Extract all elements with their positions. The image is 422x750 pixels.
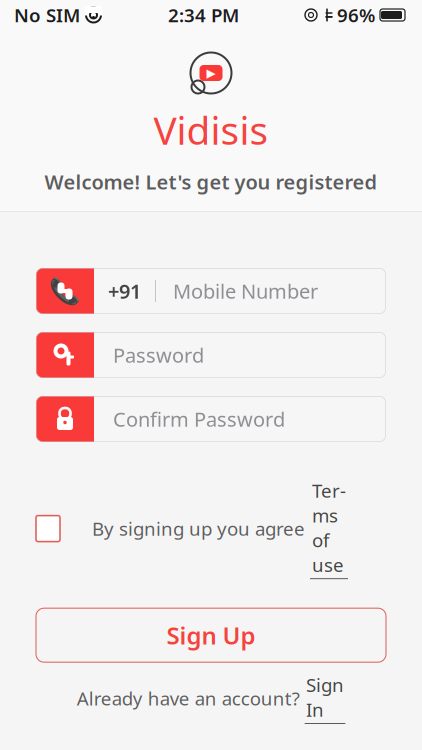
- staticText: Sign In: [306, 672, 344, 722]
- staticText: No SIM: [14, 3, 80, 27]
- staticText: Vidisis: [153, 104, 268, 155]
- staticText: ▶: [206, 66, 215, 80]
- staticText: Confirm Password: [113, 406, 285, 432]
- button[interactable]: Password: [36, 332, 386, 378]
- staticText: Welcome! Let's get you registered: [44, 168, 377, 195]
- button[interactable]: Sign Up: [36, 608, 386, 662]
- staticText: Password: [113, 342, 204, 368]
- staticText: Sign Up: [166, 619, 255, 651]
- staticText: +91: [108, 278, 141, 304]
- button[interactable]: By signing up you agree: [36, 478, 386, 579]
- staticText: Mobile Number: [173, 278, 318, 304]
- button[interactable]: Confirm Password: [36, 396, 386, 442]
- button[interactable]: 📞: [36, 268, 386, 314]
- staticText: 2:34 PM: [168, 3, 239, 27]
- staticText: Already have an account?: [77, 686, 305, 711]
- staticText: 96%: [337, 3, 375, 27]
- staticText: 📞: [49, 276, 81, 305]
- staticText: Terms of use: [312, 478, 346, 577]
- staticText: By signing up you agree: [92, 516, 310, 541]
- button[interactable]: Already have an account?: [36, 672, 386, 724]
